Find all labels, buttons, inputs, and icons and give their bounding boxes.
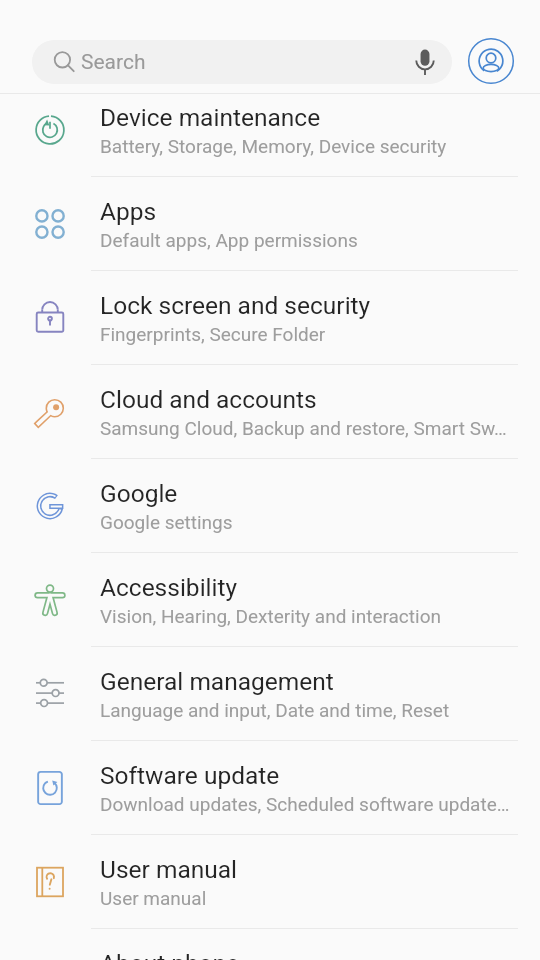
- staticText: About phone: [100, 949, 240, 960]
- button[interactable]: Account: [468, 38, 514, 84]
- button[interactable]: Device maintenance: [0, 83, 540, 177]
- staticText: Vision, Hearing, Dexterity and interacti…: [100, 605, 441, 627]
- staticText: Samsung Cloud, Backup and restore, Smart…: [100, 417, 507, 439]
- staticText: Battery, Storage, Memory, Device securit…: [100, 135, 447, 157]
- button[interactable]: Search: [32, 40, 452, 84]
- staticText: Lock screen and security: [100, 291, 371, 320]
- staticText: Device maintenance: [100, 103, 321, 132]
- button[interactable]: User manual: [0, 835, 540, 929]
- staticText: Apps: [100, 197, 157, 226]
- staticText: User manual: [100, 887, 207, 909]
- button[interactable]: Cloud and accounts: [0, 365, 540, 459]
- button[interactable]: Apps: [0, 177, 540, 271]
- staticText: Search: [81, 50, 146, 75]
- staticText: Google settings: [100, 511, 233, 533]
- button[interactable]: Accessibility: [0, 553, 540, 647]
- button[interactable]: About phone: [0, 929, 540, 960]
- staticText: Download updates, Scheduled software upd…: [100, 793, 510, 815]
- staticText: Accessibility: [100, 573, 238, 602]
- staticText: Software update: [100, 761, 280, 790]
- button[interactable]: Lock screen and security: [0, 271, 540, 365]
- staticText: Google: [100, 479, 178, 508]
- staticText: User manual: [100, 855, 238, 884]
- staticText: General management: [100, 667, 334, 696]
- button[interactable]: General management: [0, 647, 540, 741]
- button[interactable]: Software update: [0, 741, 540, 835]
- staticText: Default apps, App permissions: [100, 229, 358, 251]
- staticText: Cloud and accounts: [100, 385, 317, 414]
- button[interactable]: Google: [0, 459, 540, 553]
- staticText: Fingerprints, Secure Folder: [100, 323, 326, 345]
- staticText: Language and input, Date and time, Reset: [100, 699, 450, 721]
- button[interactable]: Voice search: [405, 41, 445, 81]
